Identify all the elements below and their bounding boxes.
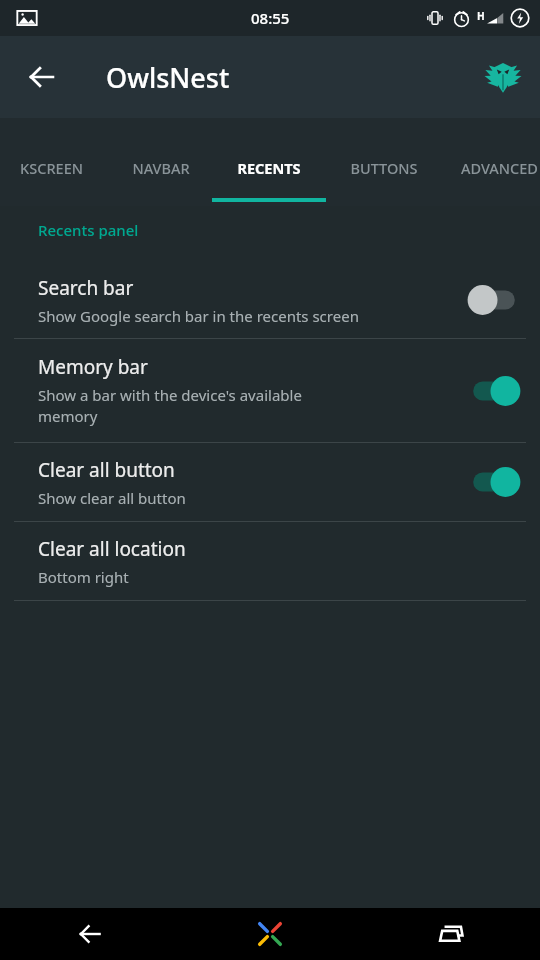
staticText: Show a bar with the device's available m… [38,385,302,427]
staticText: Show Google search bar in the recents sc… [38,306,359,326]
staticText: Recents panel [38,220,139,240]
button[interactable]: Search bar [0,262,540,338]
button[interactable]: Memory bar [0,339,540,442]
button[interactable]: Back [14,49,70,105]
button[interactable]: Toggle on [468,374,520,408]
staticText: ADVANCED [461,158,538,178]
button[interactable]: KSCREEN [2,118,101,206]
button[interactable]: ADVANCED [445,118,540,206]
staticText: H [477,9,485,23]
staticText: Search bar [38,275,134,301]
staticText: BUTTONS [350,158,418,178]
staticText: RECENTS [237,158,301,178]
staticText: Clear all location [38,536,186,562]
button[interactable]: NAVBAR [116,118,205,206]
staticText: Memory bar [38,354,148,380]
staticText: Show clear all button [38,488,186,508]
button[interactable]: BUTTONS [334,118,433,206]
button[interactable]: OwlsNest logo [476,50,530,104]
button[interactable]: Toggle off [468,283,520,317]
button[interactable]: Recents [360,908,540,960]
button[interactable]: RECENTS [219,118,318,206]
staticText: Clear all button [38,457,175,483]
staticText: 08:55 [251,8,290,28]
staticText: NAVBAR [132,158,190,178]
button[interactable]: Back [0,908,180,960]
button[interactable]: Home [180,908,360,960]
button[interactable]: Clear all button [0,443,540,521]
button[interactable]: Clear all location [0,522,540,600]
staticText: OwlsNest [106,59,230,96]
button[interactable]: Toggle on [468,465,520,499]
staticText: KSCREEN [20,158,83,178]
staticText: Bottom right [38,567,129,587]
